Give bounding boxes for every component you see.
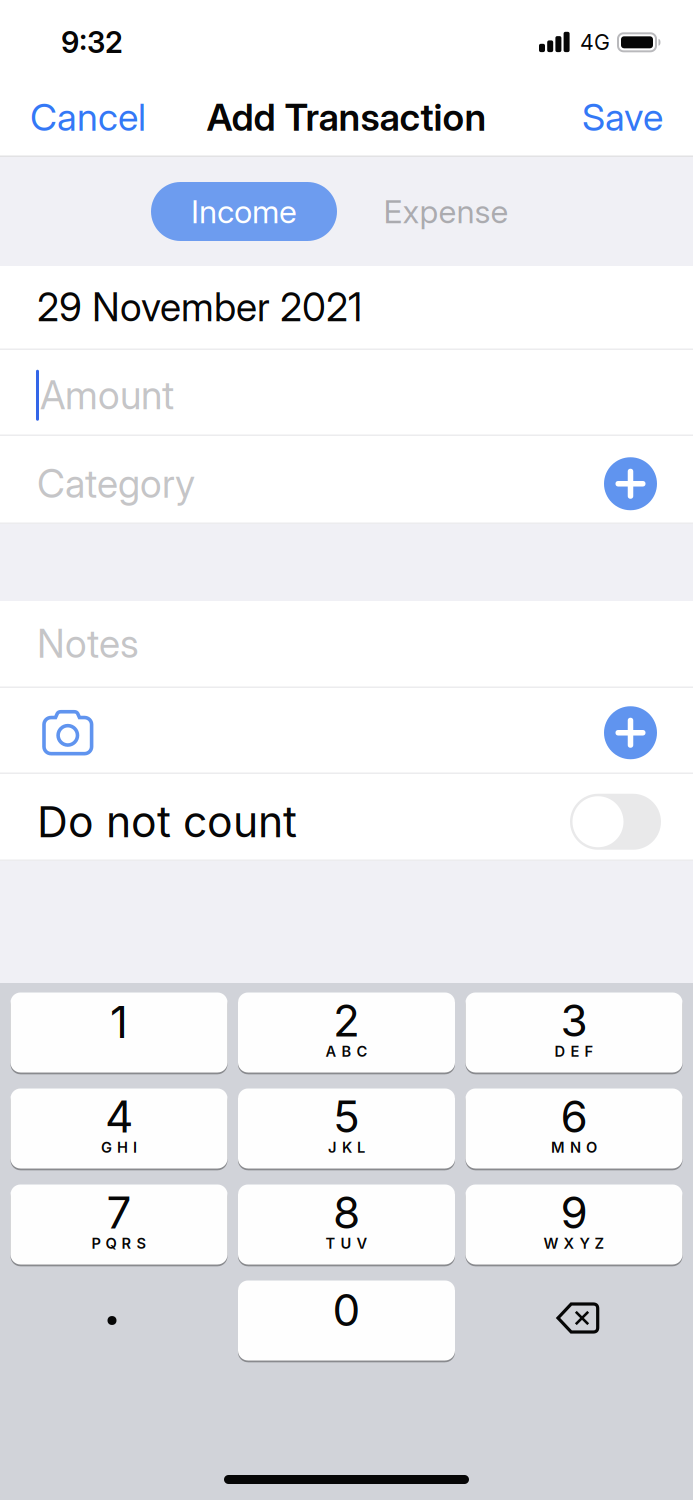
- button[interactable]: 5: [238, 1088, 455, 1168]
- staticText: 5: [333, 1090, 360, 1142]
- button[interactable]: Expense: [337, 182, 555, 241]
- staticText: MNO: [551, 1139, 597, 1156]
- staticText: 7: [106, 1186, 131, 1238]
- staticText: DEF: [554, 1043, 593, 1060]
- staticText: Notes: [37, 621, 139, 666]
- button[interactable]: Cancel: [30, 95, 146, 139]
- staticText: 3: [560, 994, 587, 1046]
- button[interactable]: Amount: [0, 350, 693, 436]
- button[interactable]: 3: [465, 992, 682, 1072]
- button[interactable]: 1: [10, 992, 227, 1072]
- button[interactable]: Notes: [0, 601, 693, 688]
- button[interactable]: Decimal point: [10, 1280, 227, 1360]
- button[interactable]: 2: [238, 992, 455, 1072]
- staticText: 6: [560, 1090, 587, 1142]
- button[interactable]: Take photo: [44, 712, 92, 754]
- staticText: 4G: [580, 30, 610, 55]
- staticText: WXYZ: [543, 1235, 604, 1252]
- staticText: 2: [333, 994, 360, 1046]
- staticText: Cancel: [30, 95, 146, 139]
- button[interactable]: 29 November 2021: [0, 266, 693, 350]
- button[interactable]: Delete: [465, 1280, 682, 1360]
- staticText: Category: [37, 461, 195, 506]
- staticText: Expense: [383, 193, 508, 230]
- staticText: 9:32: [61, 25, 123, 60]
- button[interactable]: 7: [10, 1184, 227, 1264]
- staticText: 29 November 2021: [37, 284, 362, 330]
- button[interactable]: 6: [465, 1088, 682, 1168]
- staticText: PQRS: [91, 1235, 146, 1252]
- staticText: Do not count: [37, 797, 297, 847]
- button[interactable]: Do not count: [570, 794, 661, 850]
- button[interactable]: 0: [238, 1280, 455, 1360]
- button[interactable]: 4: [10, 1088, 227, 1168]
- button[interactable]: Add photo: [604, 706, 657, 759]
- button[interactable]: 9: [465, 1184, 682, 1264]
- button[interactable]: Income: [151, 182, 337, 241]
- staticText: JKL: [328, 1139, 365, 1156]
- staticText: TUV: [325, 1235, 367, 1252]
- staticText: 1: [110, 996, 128, 1048]
- staticText: 8: [333, 1186, 360, 1238]
- staticText: Add Transaction: [206, 95, 486, 139]
- button[interactable]: Save: [582, 95, 663, 139]
- staticText: 0: [332, 1284, 360, 1336]
- staticText: Save: [582, 95, 663, 139]
- staticText: 4: [105, 1090, 133, 1142]
- button[interactable]: 8: [238, 1184, 455, 1264]
- button[interactable]: Add category: [604, 457, 657, 510]
- staticText: ABC: [325, 1043, 367, 1060]
- staticText: Amount: [40, 372, 174, 418]
- staticText: Income: [191, 193, 297, 230]
- staticText: 9: [560, 1186, 587, 1238]
- staticText: GHI: [101, 1139, 137, 1156]
